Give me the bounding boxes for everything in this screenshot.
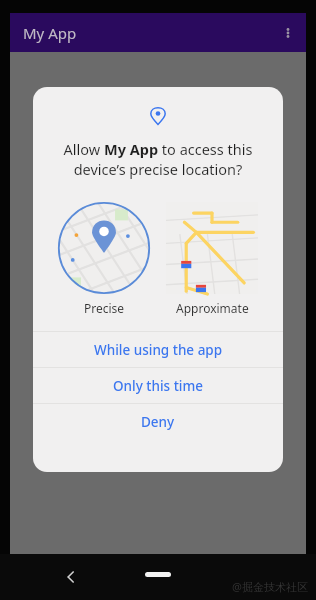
- staticText: @掘金技术社区: [232, 579, 308, 594]
- staticText: While using the app: [94, 341, 223, 359]
- staticText: Precise: [84, 300, 125, 316]
- button[interactable]: Back: [62, 568, 80, 586]
- button[interactable]: Home: [145, 572, 171, 577]
- button[interactable]: Precise: [54, 198, 154, 320]
- staticText: My App: [23, 23, 77, 43]
- staticText: Only this time: [113, 377, 204, 395]
- button[interactable]: Approximate: [162, 198, 262, 320]
- button[interactable]: While using the app: [33, 332, 283, 367]
- button[interactable]: Only this time: [33, 368, 283, 403]
- button[interactable]: Deny: [33, 404, 283, 439]
- staticText: Allow My App to access this device’s pre…: [53, 139, 263, 180]
- staticText: Deny: [141, 413, 175, 431]
- button[interactable]: More options: [270, 15, 306, 51]
- staticText: Approximate: [176, 300, 249, 316]
